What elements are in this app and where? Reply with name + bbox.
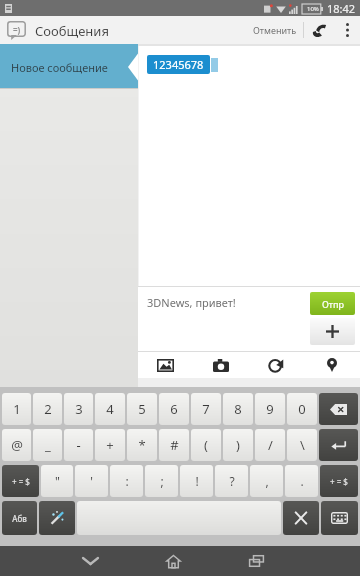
button[interactable]: Home — [132, 546, 215, 576]
staticText: + = $ — [330, 476, 348, 487]
button[interactable]: Hide keyboard — [49, 546, 132, 576]
staticText: 12345678 — [153, 57, 204, 72]
staticText: Сообщения — [35, 22, 109, 40]
button[interactable]: 7 — [191, 393, 221, 425]
staticText: ! — [195, 473, 199, 489]
staticText: 3 — [75, 400, 83, 418]
button[interactable]: 3 — [64, 393, 93, 425]
button[interactable]: Share location — [304, 352, 360, 378]
button[interactable]: More options — [334, 16, 360, 44]
button[interactable]: Новое сообщение — [0, 46, 138, 88]
staticText: ? — [229, 473, 235, 489]
staticText: 6 — [170, 400, 178, 418]
staticText: * — [138, 436, 146, 454]
button[interactable]: ; — [145, 465, 178, 497]
button[interactable]: Sticker — [248, 352, 304, 378]
button[interactable]: Change keyboard — [321, 501, 358, 535]
staticText: ( — [204, 436, 208, 454]
staticText: " — [55, 473, 60, 489]
button[interactable]: ? — [215, 465, 248, 497]
staticText: . — [300, 473, 304, 489]
button[interactable]: Отпр — [310, 292, 355, 315]
button[interactable]: _ — [33, 429, 62, 461]
button[interactable]: * — [127, 429, 157, 461]
staticText: 1 — [13, 400, 21, 418]
button[interactable]: + = $ — [2, 465, 39, 497]
staticText: # — [170, 436, 179, 454]
button[interactable]: 8 — [223, 393, 253, 425]
staticText: Новое сообщение — [11, 60, 108, 75]
button[interactable]: ! — [180, 465, 213, 497]
button[interactable]: Messages — [7, 21, 26, 40]
staticText: =) — [13, 24, 21, 35]
staticText: 4 — [106, 400, 114, 418]
button[interactable]: 5 — [127, 393, 157, 425]
button[interactable]: Settings — [283, 501, 319, 535]
button[interactable]: + = $ — [320, 465, 358, 497]
staticText: 8 — [234, 400, 242, 418]
button[interactable]: 2 — [33, 393, 62, 425]
button[interactable]: 4 — [95, 393, 125, 425]
button[interactable]: Take photo — [193, 352, 248, 378]
staticText: ) — [236, 436, 240, 454]
button[interactable]: . — [285, 465, 318, 497]
staticText: - — [76, 436, 81, 454]
staticText: / — [268, 436, 273, 454]
button[interactable]: 1 — [2, 393, 31, 425]
staticText: Абв — [12, 513, 27, 524]
staticText: 18:42 — [327, 1, 356, 16]
staticText: + = $ — [12, 476, 30, 487]
staticText: 0 — [298, 400, 306, 418]
staticText: _ — [45, 436, 51, 454]
button[interactable]: Input tools — [39, 501, 75, 535]
button[interactable]: - — [64, 429, 93, 461]
button[interactable]: 6 — [159, 393, 189, 425]
button[interactable]: 12345678 — [153, 57, 204, 72]
button[interactable]: @ — [2, 429, 31, 461]
staticText: 3DNews, привет! — [147, 295, 236, 310]
staticText: \ — [300, 436, 305, 454]
button[interactable]: ( — [191, 429, 221, 461]
button[interactable]: Абв — [2, 501, 37, 535]
button[interactable]: : — [110, 465, 143, 497]
staticText: ; — [160, 473, 164, 489]
staticText: , — [265, 473, 269, 489]
button[interactable]: # — [159, 429, 189, 461]
button[interactable]: Recent apps — [215, 546, 298, 576]
button[interactable]: Отменить — [247, 17, 303, 43]
button[interactable]: 9 — [255, 393, 285, 425]
button[interactable]: Backspace — [319, 393, 358, 425]
staticText: @ — [11, 436, 23, 454]
button[interactable]: Attach image — [138, 352, 193, 378]
staticText: 5 — [138, 400, 146, 418]
button[interactable]: Enter — [319, 429, 358, 461]
button[interactable]: \ — [287, 429, 317, 461]
button[interactable]: Call — [304, 16, 334, 44]
staticText: 9 — [266, 400, 274, 418]
staticText: 10% — [307, 5, 319, 13]
button[interactable]: Space — [77, 501, 281, 535]
staticText: : — [125, 473, 129, 489]
button[interactable]: / — [255, 429, 285, 461]
button[interactable]: 0 — [287, 393, 317, 425]
staticText: ' — [90, 473, 93, 489]
staticText: 7 — [202, 400, 210, 418]
button[interactable]: ' — [75, 465, 108, 497]
button[interactable]: " — [41, 465, 73, 497]
button[interactable]: + — [95, 429, 125, 461]
button[interactable]: ) — [223, 429, 253, 461]
button[interactable]: Add attachment — [310, 318, 355, 345]
staticText: Отменить — [253, 24, 297, 36]
staticText: Отпр — [322, 298, 344, 310]
button[interactable]: , — [250, 465, 283, 497]
staticText: + — [106, 436, 114, 454]
staticText: 2 — [44, 400, 52, 418]
